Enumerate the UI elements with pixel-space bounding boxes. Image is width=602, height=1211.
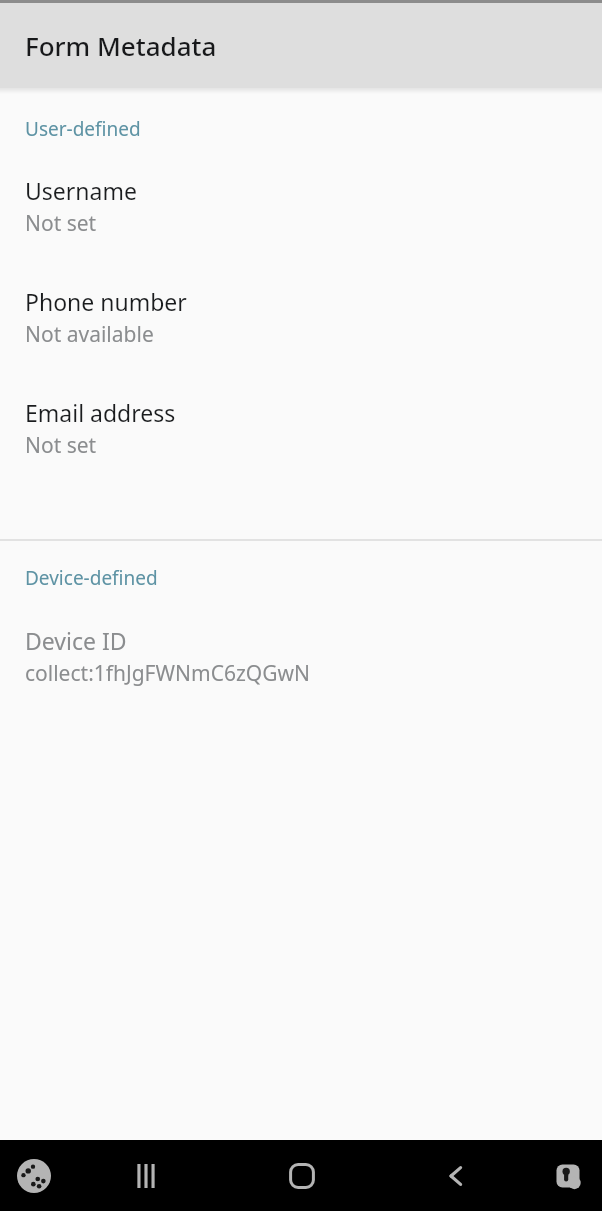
button[interactable]: Recent apps <box>68 1140 224 1211</box>
staticText: Device-defined <box>25 565 158 591</box>
button[interactable]: Home <box>224 1140 379 1211</box>
staticText: Not set <box>25 431 97 460</box>
staticText: Username <box>25 175 137 206</box>
staticText: Phone number <box>25 286 187 317</box>
staticText: collect:1fhJgFWNmC6zQGwN <box>25 659 310 688</box>
staticText: Not set <box>25 209 97 238</box>
staticText: Form Metadata <box>25 28 217 63</box>
button[interactable]: Game tools <box>0 1140 68 1211</box>
staticText: Email address <box>25 397 176 428</box>
button[interactable]: Email address <box>0 393 602 504</box>
staticText: Device ID <box>25 625 127 656</box>
button[interactable]: Device ID <box>0 621 602 732</box>
button[interactable]: Username <box>0 171 602 282</box>
button[interactable]: Phone number <box>0 282 602 393</box>
button[interactable]: Back <box>379 1140 534 1211</box>
button[interactable]: Touch assistant <box>534 1140 602 1211</box>
staticText: User-defined <box>25 116 141 142</box>
staticText: Not available <box>25 320 154 349</box>
